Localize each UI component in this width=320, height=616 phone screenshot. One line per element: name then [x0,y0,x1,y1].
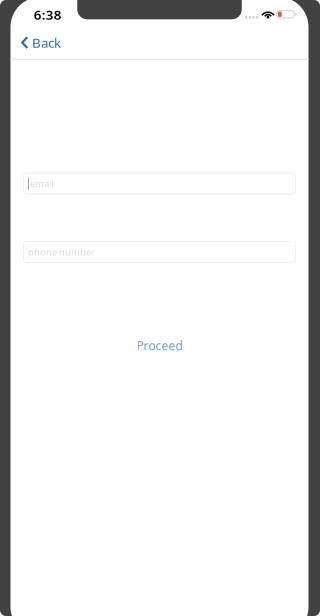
button[interactable]: Back [10,27,73,57]
staticText: 6:38 [34,6,62,23]
button[interactable]: Proceed [99,336,219,354]
staticText: phone number [28,246,95,258]
staticText: email [30,177,53,190]
staticText: Back [32,34,61,51]
staticText: Proceed [136,337,182,353]
